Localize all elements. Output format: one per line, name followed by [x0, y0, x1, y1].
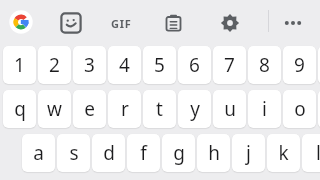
staticText: f — [140, 140, 147, 166]
staticText: 7 — [224, 52, 235, 78]
staticText: q — [14, 96, 26, 122]
button[interactable]: Settings — [217, 10, 243, 36]
staticText: 1 — [14, 52, 25, 78]
button[interactable]: d — [92, 134, 125, 172]
button[interactable]: p — [318, 90, 320, 128]
staticText: j — [246, 140, 251, 166]
button[interactable]: Stickers and emoji — [58, 11, 84, 35]
button[interactable]: j — [232, 134, 265, 172]
button[interactable]: o — [283, 90, 316, 128]
button[interactable]: e — [73, 90, 106, 128]
button[interactable]: a — [22, 134, 55, 172]
staticText: a — [33, 140, 44, 166]
staticText: o — [294, 96, 306, 122]
button[interactable]: g — [162, 134, 195, 172]
button[interactable]: h — [197, 134, 230, 172]
button[interactable]: GIF — [105, 12, 137, 34]
button[interactable]: i — [248, 90, 281, 128]
button[interactable]: 9 — [283, 46, 316, 84]
button[interactable]: l — [302, 134, 320, 172]
button[interactable]: Google search — [8, 9, 34, 35]
button[interactable]: 6 — [178, 46, 211, 84]
staticText: 5 — [154, 52, 165, 78]
button[interactable]: q — [3, 90, 36, 128]
staticText: r — [121, 96, 129, 122]
button[interactable]: s — [57, 134, 90, 172]
button[interactable]: 7 — [213, 46, 246, 84]
button[interactable]: 3 — [73, 46, 106, 84]
staticText: e — [84, 96, 95, 122]
staticText: w — [47, 96, 62, 122]
button[interactable]: k — [267, 134, 300, 172]
button[interactable]: 2 — [38, 46, 71, 84]
button[interactable]: u — [213, 90, 246, 128]
staticText: 4 — [119, 52, 130, 78]
staticText: y — [190, 96, 200, 122]
button[interactable]: r — [108, 90, 141, 128]
button[interactable]: More options — [279, 10, 307, 36]
button[interactable]: w — [38, 90, 71, 128]
button[interactable]: 5 — [143, 46, 176, 84]
staticText: GIF — [111, 16, 132, 31]
staticText: s — [69, 140, 79, 166]
button[interactable]: t — [143, 90, 176, 128]
staticText: 6 — [189, 52, 200, 78]
staticText: 2 — [49, 52, 60, 78]
staticText: 9 — [294, 52, 305, 78]
button[interactable]: Clipboard — [161, 10, 186, 36]
button[interactable]: 4 — [108, 46, 141, 84]
button[interactable]: 8 — [248, 46, 281, 84]
staticText: h — [208, 140, 220, 166]
button[interactable]: 0 — [318, 46, 320, 84]
staticText: d — [103, 140, 115, 166]
staticText: k — [278, 140, 289, 166]
button[interactable]: 1 — [3, 46, 36, 84]
staticText: l — [316, 140, 320, 166]
staticText: t — [156, 96, 163, 122]
staticText: 8 — [259, 52, 270, 78]
button[interactable]: f — [127, 134, 160, 172]
staticText: g — [173, 140, 185, 166]
staticText: u — [224, 96, 236, 122]
staticText: i — [262, 96, 267, 122]
staticText: 3 — [84, 52, 95, 78]
button[interactable]: y — [178, 90, 211, 128]
